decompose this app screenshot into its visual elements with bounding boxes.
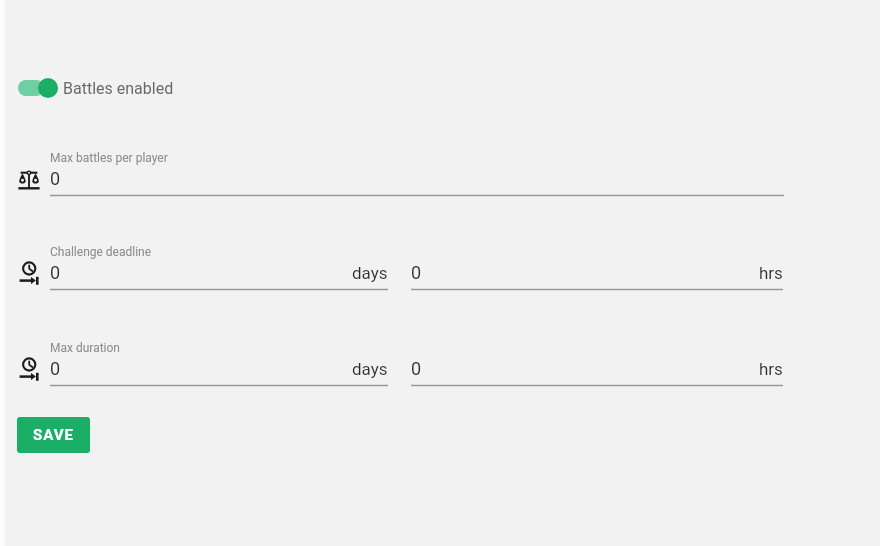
button[interactable]: Battles enabled toggle	[17, 76, 174, 100]
staticText: days	[352, 263, 388, 283]
button[interactable]: 0	[411, 245, 783, 292]
staticText: SAVE	[33, 426, 75, 444]
staticText: 0	[411, 262, 759, 283]
button[interactable]: Max duration	[50, 341, 388, 388]
other: Max duration	[17, 357, 41, 381]
button[interactable]: SAVE	[17, 417, 90, 453]
other: Max battles per player	[17, 168, 41, 192]
staticText: Battles enabled	[63, 79, 174, 98]
staticText: 0	[50, 358, 352, 379]
staticText: days	[352, 359, 388, 379]
staticText: hrs	[759, 263, 783, 283]
button[interactable]: Challenge deadline	[50, 245, 388, 292]
staticText: Max duration	[50, 341, 120, 355]
staticText: 0	[50, 262, 352, 283]
staticText: hrs	[759, 359, 783, 379]
staticText: 0	[411, 358, 759, 379]
button[interactable]: 0	[411, 341, 783, 388]
button[interactable]: Max battles per player	[50, 151, 784, 198]
staticText: 0	[50, 168, 784, 189]
staticText: Challenge deadline	[50, 245, 152, 259]
staticText: Max battles per player	[50, 151, 168, 165]
other: Challenge deadline	[17, 261, 41, 285]
